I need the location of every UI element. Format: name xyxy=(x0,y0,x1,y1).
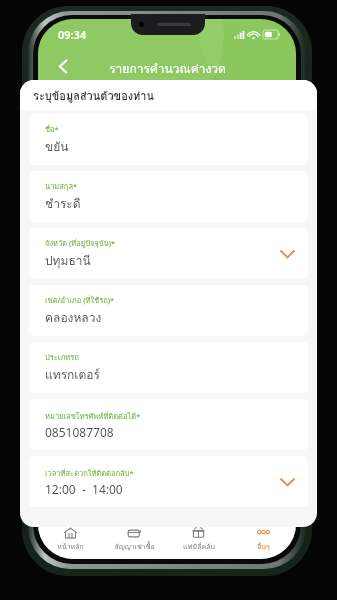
staticText: แฟมิลี่คลับ xyxy=(183,541,215,552)
staticText: 09:34 xyxy=(58,27,87,42)
staticText: ขยัน xyxy=(45,137,69,156)
button[interactable]: ชื่อ* xyxy=(29,114,308,165)
button[interactable]: แฟมิลี่คลับ xyxy=(166,519,231,559)
button[interactable]: ประเภทรถ xyxy=(29,342,308,393)
button[interactable]: เวลาที่สะดวกให้ติดต่อกลับ* xyxy=(29,456,308,507)
staticText: อื่นๆ xyxy=(257,541,270,552)
staticText: หน้าหลัก xyxy=(57,541,84,552)
staticText: 0851087708 xyxy=(45,424,114,440)
button[interactable]: หมายเลขโทรศัพท์ที่ติดต่อได้* xyxy=(29,399,308,450)
staticText: เขต/อำเภอ (ที่ใช้รถ)* xyxy=(45,294,115,306)
staticText: เวลาที่สะดวกให้ติดต่อกลับ* xyxy=(45,467,134,479)
staticText: ชื่อ* xyxy=(45,123,59,135)
staticText: ชำระดี xyxy=(45,194,81,213)
button[interactable]: เขต/อำเภอ (ที่ใช้รถ)* xyxy=(29,285,308,336)
staticText: สัญญาเช่าซื้อ xyxy=(114,541,155,552)
staticText: แทรกเตอร์ xyxy=(45,365,100,384)
button[interactable]: จังหวัด (ที่อยู่ปัจจุบัน)* xyxy=(29,228,308,279)
button[interactable]: Back xyxy=(46,49,80,83)
staticText: คลองหลวง xyxy=(45,308,102,327)
staticText: ประเภทรถ xyxy=(45,351,79,363)
staticText: 12:00 - 14:00 xyxy=(45,481,123,497)
button[interactable]: หน้าหลัก xyxy=(38,519,102,559)
button[interactable]: อื่นๆ xyxy=(231,519,296,559)
staticText: จังหวัด (ที่อยู่ปัจจุบัน)* xyxy=(45,237,116,249)
staticText: นามสกุล* xyxy=(45,180,78,192)
staticText: ปทุมธานี xyxy=(45,251,91,270)
staticText: ระบุข้อมูลส่วนตัวของท่าน xyxy=(33,87,155,104)
button[interactable]: นามสกุล* xyxy=(29,171,308,222)
button[interactable]: สัญญาเช่าซื้อ xyxy=(102,519,166,559)
staticText: หมายเลขโทรศัพท์ที่ติดต่อได้* xyxy=(45,410,141,422)
staticText: รายการคำนวณค่างวด xyxy=(109,59,226,78)
